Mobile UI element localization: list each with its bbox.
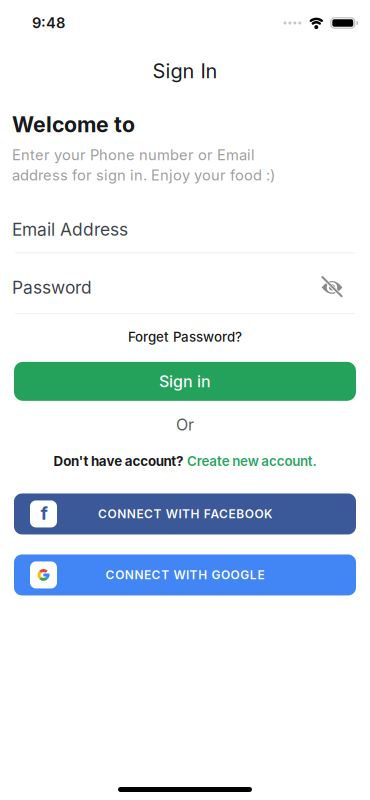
staticText: Forget Password?: [128, 329, 242, 345]
button[interactable]: Show password: [321, 276, 343, 298]
staticText: CONNECT WITH FACEBOOK: [98, 507, 272, 521]
button[interactable]: Forget Password?: [128, 329, 242, 345]
staticText: 9:48: [32, 14, 65, 32]
button[interactable]: CONNECT WITH GOOGLE: [14, 554, 356, 595]
button[interactable]: Sign in: [14, 362, 356, 401]
button[interactable]: Email Address: [14, 219, 356, 240]
staticText: Create new account.: [187, 453, 316, 469]
staticText: CONNECT WITH GOOGLE: [106, 568, 264, 582]
staticText: Don't have account?: [53, 453, 183, 469]
button[interactable]: Password: [14, 276, 356, 298]
staticText: Welcome to: [12, 112, 135, 137]
staticText: Or: [176, 415, 194, 434]
button[interactable]: f: [14, 493, 356, 534]
staticText: Sign in: [159, 372, 211, 391]
staticText: Sign In: [152, 59, 217, 83]
staticText: Enter your Phone number or Email address…: [12, 146, 275, 184]
staticText: Email Address: [12, 219, 128, 240]
button[interactable]: Create new account.: [187, 453, 316, 469]
staticText: Password: [12, 277, 92, 298]
staticText: f: [40, 502, 47, 524]
